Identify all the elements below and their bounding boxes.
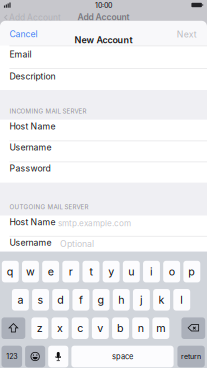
staticText: smtp.example.com bbox=[58, 218, 131, 228]
button[interactable]: u bbox=[0, 0, 207, 368]
staticText: Host Name bbox=[9, 121, 55, 132]
staticText: i bbox=[150, 265, 153, 278]
button[interactable]: Cancel bbox=[10, 30, 54, 39]
button[interactable]: x bbox=[0, 0, 207, 368]
staticText: Add Account bbox=[77, 12, 129, 22]
button[interactable]: b bbox=[0, 0, 207, 368]
staticText: Next bbox=[177, 29, 197, 40]
button[interactable]: d bbox=[0, 0, 207, 368]
staticText: e bbox=[48, 265, 54, 278]
staticText: y bbox=[108, 265, 114, 278]
button[interactable]: i bbox=[0, 0, 207, 368]
button[interactable]: Password bbox=[0, 162, 207, 183]
button[interactable]: c bbox=[0, 0, 207, 368]
button[interactable]: Description bbox=[0, 68, 207, 90]
staticText: t bbox=[89, 265, 92, 278]
staticText: OUTGOING MAIL SERVER bbox=[9, 203, 88, 211]
staticText: Optional bbox=[60, 239, 94, 249]
button[interactable]: g bbox=[0, 0, 207, 368]
button[interactable]: Delete bbox=[0, 0, 207, 368]
button[interactable]: v bbox=[0, 0, 207, 368]
button[interactable]: l bbox=[0, 0, 207, 368]
button[interactable]: e bbox=[0, 0, 207, 368]
button[interactable]: j bbox=[0, 0, 207, 368]
button[interactable]: space bbox=[0, 0, 207, 368]
staticText: r bbox=[69, 265, 73, 278]
button[interactable]: Host Name bbox=[0, 215, 207, 236]
staticText: g bbox=[98, 293, 105, 306]
staticText: return bbox=[181, 352, 201, 361]
button[interactable]: m bbox=[0, 0, 207, 368]
button[interactable]: z bbox=[0, 0, 207, 368]
button[interactable]: Emoji keyboard bbox=[0, 0, 207, 368]
button[interactable]: k bbox=[0, 0, 207, 368]
staticText: j bbox=[140, 293, 143, 306]
staticText: 10:00 bbox=[95, 1, 112, 10]
staticText: Password bbox=[9, 163, 50, 174]
button[interactable]: s bbox=[0, 0, 207, 368]
staticText: f bbox=[79, 293, 83, 306]
button[interactable]: Email bbox=[0, 46, 207, 68]
button[interactable]: o bbox=[0, 0, 207, 368]
button[interactable]: y bbox=[0, 0, 207, 368]
button[interactable]: w bbox=[0, 0, 207, 368]
staticText: Description bbox=[9, 71, 55, 82]
staticText: c bbox=[77, 322, 83, 335]
button[interactable]: h bbox=[0, 0, 207, 368]
button[interactable]: n bbox=[0, 0, 207, 368]
button[interactable]: 123 bbox=[0, 0, 207, 368]
staticText: Email bbox=[9, 49, 31, 60]
staticText: o bbox=[169, 265, 175, 278]
button[interactable]: Username bbox=[0, 141, 207, 162]
staticText: Host Name bbox=[9, 217, 55, 227]
staticText: h bbox=[118, 293, 124, 306]
staticText: p bbox=[188, 265, 195, 278]
staticText: Cancel bbox=[10, 29, 38, 39]
staticText: v bbox=[97, 322, 103, 335]
staticText: w bbox=[26, 265, 35, 278]
button[interactable]: Next bbox=[153, 30, 197, 39]
staticText: New Account bbox=[74, 35, 132, 46]
staticText: s bbox=[38, 293, 44, 306]
button[interactable]: p bbox=[0, 0, 207, 368]
button[interactable]: r bbox=[0, 0, 207, 368]
staticText: INCOMING MAIL SERVER bbox=[9, 108, 86, 115]
staticText: b bbox=[117, 322, 124, 335]
staticText: l bbox=[180, 293, 183, 306]
staticText: x bbox=[57, 322, 63, 335]
button[interactable]: q bbox=[0, 0, 207, 368]
button[interactable]: a bbox=[0, 0, 207, 368]
button[interactable]: Shift bbox=[0, 0, 207, 368]
button[interactable]: Username bbox=[0, 236, 207, 252]
staticText: 123 bbox=[6, 352, 17, 361]
staticText: Username bbox=[9, 237, 51, 248]
button[interactable]: Host Name bbox=[0, 120, 207, 141]
button[interactable]: return bbox=[0, 0, 207, 368]
staticText: Add Account bbox=[9, 12, 61, 22]
staticText: u bbox=[128, 265, 134, 278]
staticText: n bbox=[138, 322, 144, 335]
button[interactable]: t bbox=[0, 0, 207, 368]
staticText: q bbox=[7, 265, 14, 278]
staticText: z bbox=[37, 322, 43, 335]
staticText: a bbox=[17, 293, 23, 306]
button[interactable]: Dictation bbox=[0, 0, 207, 368]
button[interactable]: f bbox=[0, 0, 207, 368]
staticText: d bbox=[57, 293, 64, 306]
staticText: space bbox=[112, 352, 133, 361]
staticText: Username bbox=[9, 142, 51, 153]
staticText: k bbox=[159, 293, 165, 306]
staticText: m bbox=[156, 322, 165, 335]
